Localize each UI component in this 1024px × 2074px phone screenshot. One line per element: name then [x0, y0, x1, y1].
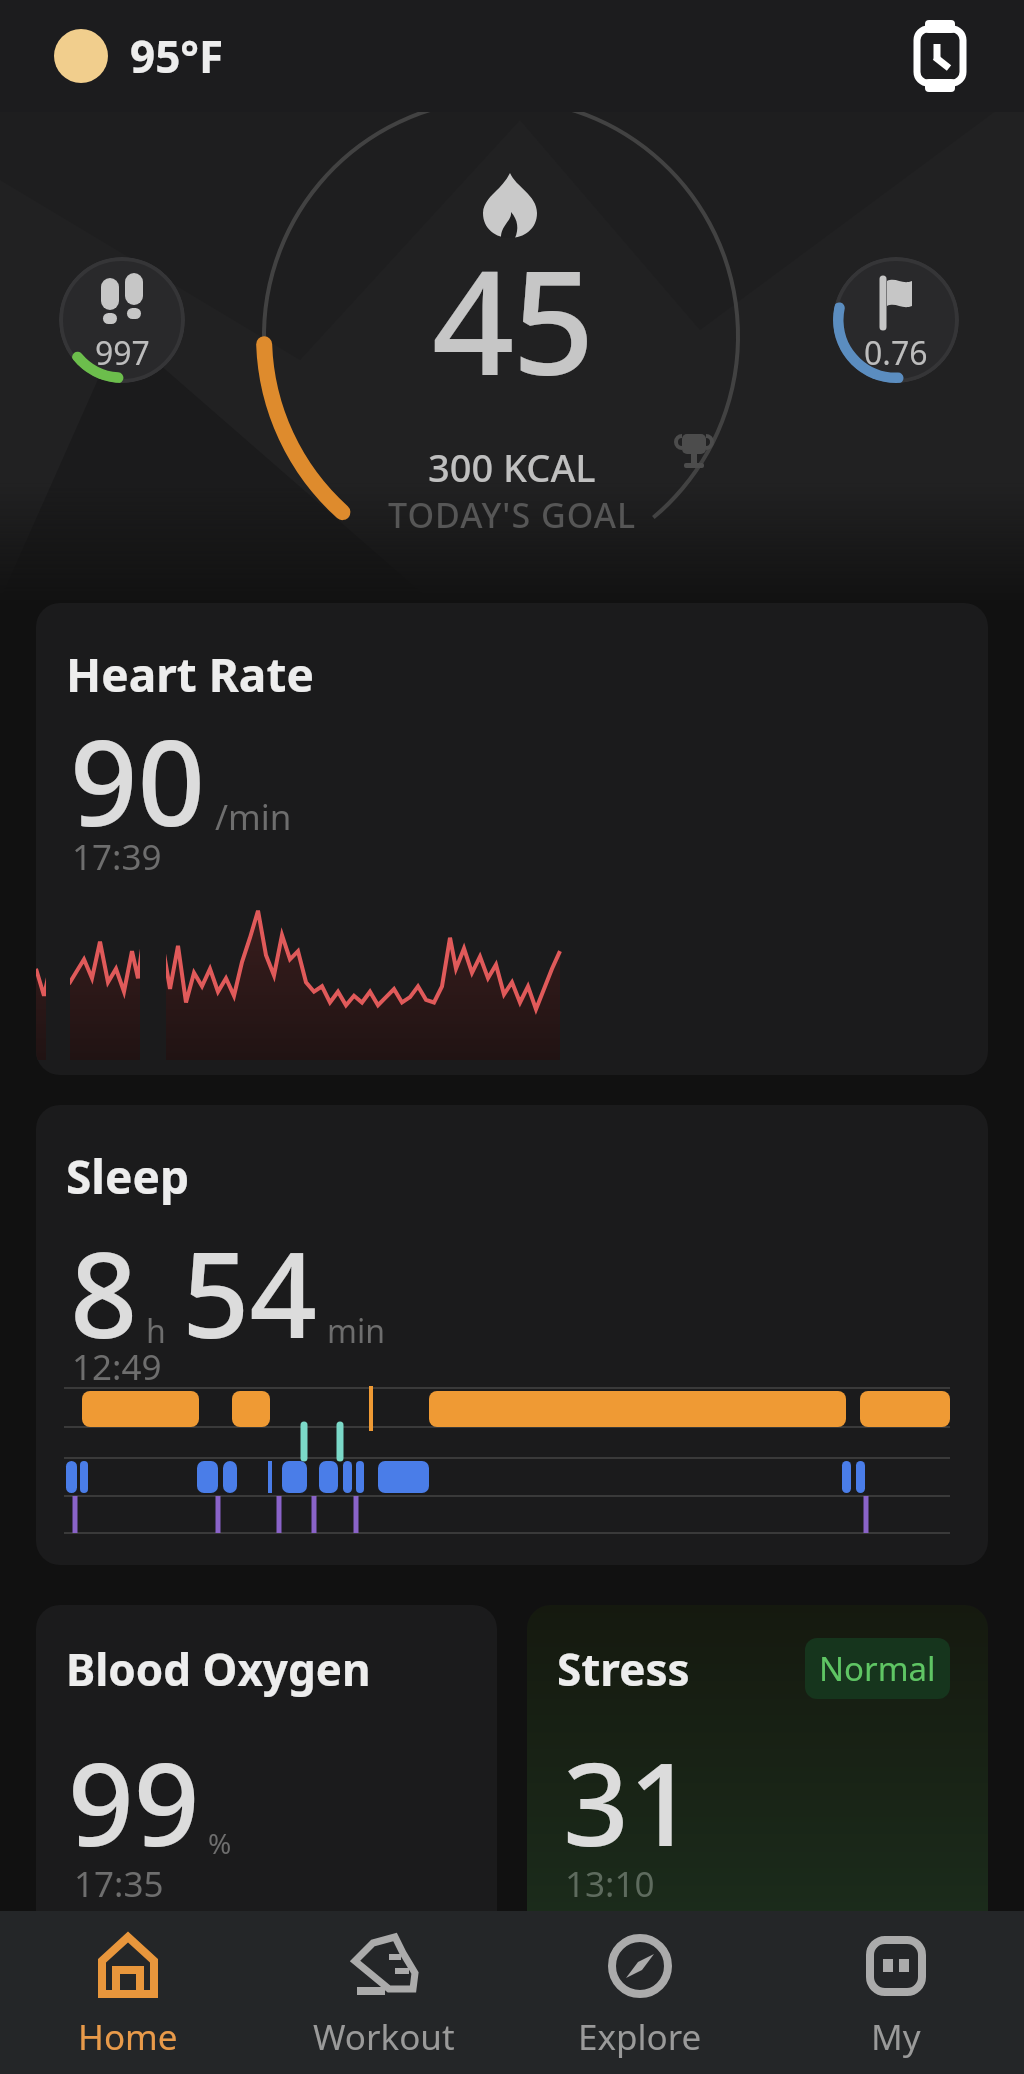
- staticText: 8: [70, 1212, 138, 1373]
- button[interactable]: Stress: [527, 1605, 988, 1911]
- staticText: 95°F: [130, 26, 224, 86]
- staticText: My: [871, 2013, 921, 2061]
- staticText: min: [327, 1309, 385, 1353]
- staticText: 300 KCAL: [428, 441, 596, 493]
- staticText: 99: [68, 1723, 200, 1880]
- button[interactable]: [902, 18, 978, 94]
- staticText: Heart Rate: [66, 643, 314, 706]
- staticText: 0.76: [864, 331, 928, 375]
- staticText: 17:35: [74, 1860, 164, 1908]
- button[interactable]: Sleep: [36, 1105, 988, 1565]
- staticText: Sleep: [66, 1145, 190, 1208]
- staticText: Blood Oxygen: [66, 1639, 371, 1699]
- staticText: 13:10: [565, 1860, 655, 1908]
- staticText: 12:49: [72, 1343, 162, 1391]
- staticText: 997: [95, 331, 150, 375]
- staticText: 17:39: [72, 833, 162, 881]
- staticText: 31: [563, 1723, 695, 1880]
- button[interactable]: My: [768, 1911, 1024, 2074]
- button[interactable]: 0.76: [833, 257, 959, 383]
- button[interactable]: Workout: [256, 1911, 512, 2074]
- button[interactable]: Explore: [512, 1911, 768, 2074]
- staticText: Stress: [557, 1639, 690, 1699]
- staticText: Home: [78, 2013, 178, 2061]
- staticText: Normal: [819, 1646, 936, 1691]
- staticText: %: [208, 1824, 232, 1862]
- staticText: /min: [215, 793, 292, 841]
- button[interactable]: Home: [0, 1911, 256, 2074]
- staticText: 45: [432, 221, 593, 417]
- staticText: Explore: [578, 2013, 702, 2061]
- staticText: 54: [182, 1212, 317, 1373]
- button[interactable]: 997: [59, 257, 185, 383]
- staticText: Workout: [313, 2013, 455, 2061]
- staticText: h: [146, 1309, 166, 1353]
- staticText: TODAY'S GOAL: [388, 492, 637, 538]
- button[interactable]: Blood Oxygen: [36, 1605, 497, 1911]
- button[interactable]: Heart Rate: [36, 603, 988, 1075]
- staticText: 90: [70, 700, 205, 861]
